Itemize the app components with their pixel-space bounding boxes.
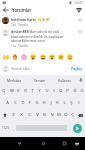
- staticText: Yorum ekle...: [11, 66, 33, 71]
- staticText: beldham.harbi: [11, 17, 37, 22]
- button[interactable]: Back: [15, 139, 24, 148]
- staticText: Q: [2, 88, 6, 94]
- staticText: Paylaş: [71, 66, 82, 71]
- button[interactable]: Q: [0, 85, 8, 97]
- button[interactable]: Recents: [60, 139, 69, 148]
- button[interactable]: L: [61, 97, 68, 109]
- button[interactable]: Ö: [62, 109, 69, 121]
- button[interactable]: Like: [77, 29, 83, 35]
- button[interactable]: E: [15, 85, 22, 97]
- button[interactable]: J: [47, 97, 54, 109]
- button[interactable]: Ş: [68, 97, 75, 109]
- button[interactable]: Ğ: [71, 85, 78, 97]
- staticText: Yorumlar: [12, 7, 32, 13]
- button[interactable]: H: [40, 97, 47, 109]
- button[interactable]: Ç: [69, 109, 76, 121]
- staticText: Ğ: [73, 88, 77, 94]
- button[interactable]: Z: [9, 109, 17, 121]
- button[interactable]: Emoji: [10, 52, 19, 61]
- button[interactable]: O: [57, 85, 64, 97]
- staticText: .: [70, 126, 71, 131]
- button[interactable]: Merhaba: [1, 75, 27, 85]
- staticText: deslan888 Bunushod en çok kazandıran etk…: [11, 29, 76, 43]
- staticText: W: [10, 88, 14, 94]
- staticText: Y: [38, 88, 41, 94]
- button[interactable]: I: [50, 85, 57, 97]
- button[interactable]: S: [11, 97, 19, 109]
- staticText: I: [78, 100, 80, 106]
- button[interactable]: Voice input: [77, 75, 84, 85]
- staticText: K: [56, 100, 59, 106]
- button[interactable]: beldham.harbi: [0, 14, 85, 27]
- button[interactable]: M: [55, 109, 62, 121]
- button[interactable]: Tamam: [27, 75, 52, 85]
- button[interactable]: Emoji: [38, 52, 47, 61]
- button[interactable]: Paylaş: [70, 64, 83, 73]
- button[interactable]: U: [43, 85, 50, 97]
- staticText: A: [6, 100, 9, 106]
- button[interactable]: I: [75, 97, 82, 109]
- button[interactable]: Kullanıcı: [52, 75, 77, 85]
- staticText: 1sa Yanıtla: [11, 23, 28, 27]
- button[interactable]: Emoji: [47, 52, 56, 61]
- button[interactable]: V: [33, 109, 41, 121]
- button[interactable]: T: [29, 85, 36, 97]
- button[interactable]: G: [33, 97, 40, 109]
- button[interactable]: Share: [75, 6, 83, 14]
- button[interactable]: Ü: [78, 85, 85, 97]
- button[interactable]: .: [68, 123, 73, 133]
- staticText: Ö: [64, 112, 68, 118]
- button[interactable]: Y: [36, 85, 43, 97]
- button[interactable]: Emoji: [65, 52, 74, 61]
- button[interactable]: X: [17, 109, 25, 121]
- button[interactable]: K: [54, 97, 61, 109]
- staticText: Tamam: [34, 78, 46, 82]
- staticText: R: [24, 88, 27, 94]
- button[interactable]: Emoji: [1, 52, 10, 61]
- staticText: B: [43, 112, 46, 118]
- staticText: H: [42, 100, 46, 106]
- staticText: J: [50, 100, 52, 106]
- button[interactable]: Emoji: [56, 52, 65, 61]
- staticText: X: [20, 112, 23, 118]
- button[interactable]: Like: [77, 17, 83, 23]
- button[interactable]: C: [25, 109, 33, 121]
- button[interactable]: F: [26, 97, 33, 109]
- staticText: N: [50, 112, 54, 118]
- staticText: 14:47: [74, 0, 83, 5]
- staticText: ,: [13, 126, 14, 131]
- button[interactable]: Send: [73, 124, 82, 133]
- staticText: L: [63, 100, 66, 106]
- button[interactable]: Emoji: [19, 52, 28, 61]
- button[interactable]: W: [8, 85, 15, 97]
- button[interactable]: ,: [11, 123, 15, 133]
- staticText: F: [28, 100, 31, 106]
- button[interactable]: A: [3, 97, 11, 109]
- button[interactable]: Home: [39, 139, 48, 148]
- button[interactable]: R: [22, 85, 29, 97]
- button[interactable]: Hide keyboard: [72, 139, 81, 148]
- staticText: D: [21, 100, 25, 106]
- button[interactable]: D: [19, 97, 26, 109]
- button[interactable]: Back: [2, 6, 10, 14]
- staticText: G: [35, 100, 39, 106]
- button[interactable]: Emoji: [28, 52, 37, 61]
- button[interactable]: P: [64, 85, 71, 97]
- staticText: Z: [12, 112, 15, 118]
- button[interactable]: N: [48, 109, 55, 121]
- staticText: M: [57, 112, 61, 118]
- staticText: C: [28, 112, 31, 118]
- staticText: Merhaba: [7, 78, 21, 82]
- staticText: 1sa Yanıtla: [11, 44, 28, 48]
- staticText: O: [59, 88, 63, 94]
- staticText: V: [36, 112, 39, 118]
- staticText: T: [31, 88, 34, 94]
- button[interactable]: deslan888 Bunushod en çok kazandıran etk…: [0, 29, 85, 48]
- button[interactable]: B: [41, 109, 48, 121]
- button[interactable]: Backspace: [76, 109, 85, 121]
- staticText: Ç: [71, 112, 74, 118]
- staticText: S: [14, 100, 17, 106]
- button[interactable]: Shift: [0, 109, 9, 121]
- button[interactable]: ?123: [0, 123, 11, 133]
